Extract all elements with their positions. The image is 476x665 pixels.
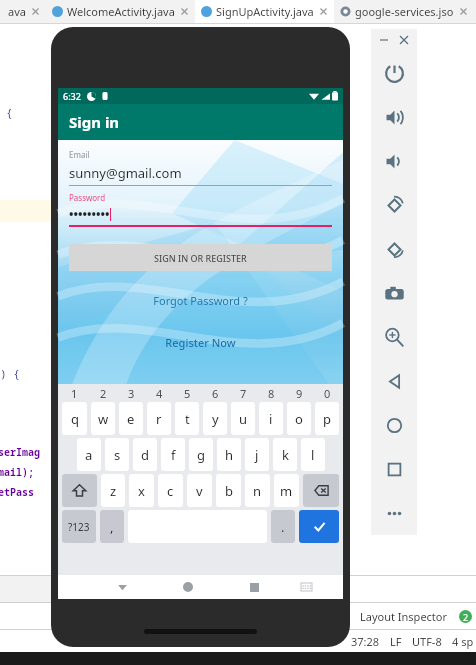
staticText: t (185, 410, 190, 428)
staticText: 4 sp (452, 634, 474, 649)
button[interactable]: Shift (62, 474, 97, 507)
staticText: 2 (100, 386, 107, 401)
staticText: { (6, 105, 13, 120)
button[interactable]: ava (2, 0, 46, 23)
button[interactable]: Volume down (371, 139, 417, 183)
button[interactable]: Volume up (371, 95, 417, 139)
button[interactable]: Delete (303, 474, 339, 507)
staticText: UTF-8 (412, 634, 442, 649)
staticText: d (141, 446, 149, 464)
button[interactable]: Screenshot (371, 271, 417, 315)
button[interactable]: Overview (243, 576, 265, 598)
button[interactable]: v (187, 474, 212, 507)
staticText: x (138, 482, 145, 500)
button[interactable]: j (245, 438, 269, 471)
button[interactable]: b (216, 474, 241, 507)
button[interactable]: l (301, 438, 325, 471)
staticText: 2 (463, 611, 469, 623)
staticText: SignUpActivity.java (216, 4, 314, 19)
staticText: 3 (128, 386, 135, 401)
button[interactable]: Close (397, 33, 411, 47)
button[interactable]: Close tab (31, 7, 40, 16)
button[interactable]: WelcomeActivity.java (46, 0, 195, 23)
button[interactable]: w (91, 402, 115, 435)
staticText: a (85, 446, 93, 464)
staticText: k (282, 446, 289, 464)
button[interactable]: f (161, 438, 185, 471)
button[interactable]: Enter (299, 510, 339, 543)
staticText: 37:28 (351, 634, 380, 649)
button[interactable]: Rotate left (371, 183, 417, 227)
staticText: ava (8, 4, 26, 19)
button[interactable]: g (189, 438, 213, 471)
staticText: 9 (296, 386, 303, 401)
staticText: g (197, 446, 205, 464)
button[interactable]: Zoom (371, 315, 417, 359)
staticText: . (281, 518, 285, 536)
staticText: 5 (184, 386, 191, 401)
button[interactable]: Register Now (69, 335, 332, 350)
button[interactable]: n (245, 474, 270, 507)
staticText: i (269, 410, 273, 428)
button[interactable]: s (105, 438, 129, 471)
button[interactable]: h (217, 438, 241, 471)
staticText: n (253, 482, 262, 500)
button[interactable]: Home (177, 576, 199, 598)
staticText: , (110, 518, 114, 536)
button[interactable]: Home (371, 403, 417, 447)
button[interactable]: m (274, 474, 299, 507)
button[interactable]: e (119, 402, 143, 435)
button[interactable]: x (129, 474, 154, 507)
button[interactable]: r (147, 402, 171, 435)
staticText: r (156, 410, 162, 428)
staticText: WelcomeActivity.java (67, 4, 175, 19)
staticText: LF (390, 634, 402, 649)
button[interactable]: Hide keyboard (111, 576, 133, 598)
button[interactable]: Close tab (459, 7, 468, 16)
staticText: m (280, 482, 293, 500)
button[interactable]: y (203, 402, 227, 435)
staticText: 4 (156, 386, 163, 401)
button[interactable]: k (273, 438, 297, 471)
button[interactable]: Forgot Password ? (69, 293, 332, 308)
button[interactable]: p (315, 402, 339, 435)
staticText: Layout Inspector (360, 609, 448, 624)
staticText: Register Now (165, 335, 236, 350)
staticText: Sign in (69, 112, 120, 132)
staticText: z (110, 482, 117, 500)
button[interactable]: ?123 (62, 510, 96, 543)
button[interactable]: d (133, 438, 157, 471)
button[interactable]: Power (371, 51, 417, 95)
button[interactable]: . (271, 510, 295, 543)
button[interactable]: More (371, 491, 417, 535)
button[interactable]: Switch keyboard (295, 576, 317, 598)
button[interactable]: Layout Inspector (357, 609, 451, 624)
staticText: 6 (212, 386, 219, 401)
staticText: f (171, 446, 176, 464)
button[interactable]: a (77, 438, 101, 471)
button[interactable]: , (100, 510, 124, 543)
button[interactable]: Overview (371, 447, 417, 491)
button[interactable]: u (231, 402, 255, 435)
button[interactable]: SignUpActivity.java (195, 0, 334, 23)
staticText: 1 (71, 386, 78, 401)
button[interactable]: t (175, 402, 199, 435)
staticText: google-services.jso (355, 4, 454, 19)
button[interactable]: o (287, 402, 311, 435)
button[interactable]: SIGN IN OR REGISTER (69, 244, 332, 271)
button[interactable]: Back (371, 359, 417, 403)
button[interactable]: Rotate right (371, 227, 417, 271)
button[interactable]: c (158, 474, 183, 507)
button[interactable]: i (259, 402, 283, 435)
button[interactable]: z (101, 474, 125, 507)
button[interactable]: Close tab (180, 7, 189, 16)
staticText: 7 (240, 386, 247, 401)
staticText: v (196, 482, 203, 500)
staticText: etPass (0, 485, 34, 499)
staticText: o (295, 410, 303, 428)
button[interactable]: Close tab (319, 7, 328, 16)
button[interactable]: google-services.jso (334, 0, 474, 23)
button[interactable]: q (62, 402, 87, 435)
button[interactable]: Minimize (377, 33, 391, 47)
